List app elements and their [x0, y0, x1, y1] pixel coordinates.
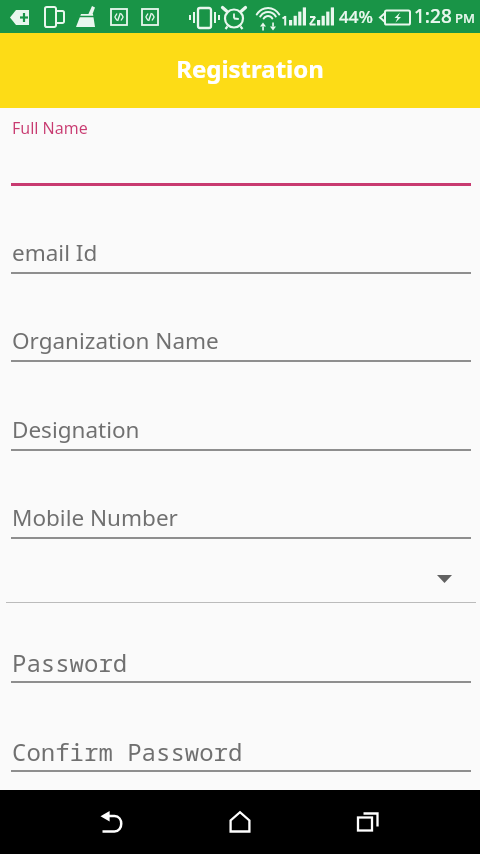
button[interactable]: Select option [0, 555, 480, 603]
button[interactable]: Confirm Password [0, 718, 480, 774]
button[interactable]: Home [204, 790, 276, 854]
staticText: Confirm Password [12, 735, 243, 768]
button[interactable]: email Id [0, 220, 480, 276]
staticText: Registration [176, 52, 324, 85]
staticText: Full Name [12, 117, 88, 139]
staticText: Organization Name [12, 325, 219, 356]
button[interactable]: Recent apps [332, 790, 404, 854]
button[interactable]: Password [0, 629, 480, 685]
button[interactable]: Organization Name [0, 308, 480, 364]
button[interactable]: Designation [0, 397, 480, 453]
staticText: PM [455, 9, 475, 27]
staticText: email Id [12, 237, 98, 268]
button[interactable]: Full Name [0, 108, 480, 188]
staticText: Designation [12, 414, 140, 445]
staticText: 44% [339, 5, 373, 28]
button[interactable]: Back [76, 790, 148, 854]
staticText: 1:28 [414, 3, 452, 29]
staticText: Password [12, 646, 128, 679]
staticText: Mobile Number [12, 502, 178, 533]
button[interactable]: Mobile Number [0, 485, 480, 541]
